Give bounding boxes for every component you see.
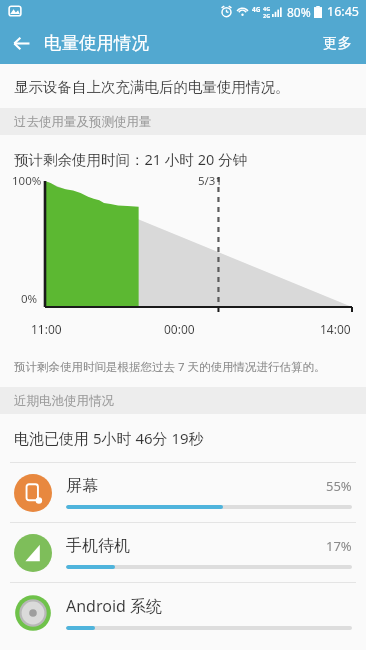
- staticText: 过去使用量及预测使用量: [14, 114, 152, 130]
- staticText: 预计剩余使用时间是根据您过去 7 天的使用情况进行估算的。: [14, 359, 326, 375]
- staticText: 16:45: [327, 3, 359, 20]
- button[interactable]: 手机待机: [0, 523, 366, 582]
- staticText: 0%: [21, 291, 38, 307]
- staticText: 17%: [326, 537, 352, 555]
- staticText: 预计剩余使用时间：21 小时 20 分钟: [14, 149, 247, 169]
- staticText: 显示设备自上次充满电后的电量使用情况。: [14, 78, 290, 96]
- staticText: 00:00: [164, 321, 195, 337]
- staticText: Android 系统: [66, 595, 352, 617]
- staticText: 100%: [12, 173, 42, 189]
- staticText: 11:00: [31, 321, 62, 337]
- staticText: 电池已使用 5小时 46分 19秒: [14, 428, 204, 448]
- button[interactable]: 返回: [0, 22, 42, 64]
- staticText: 80%: [287, 4, 311, 20]
- staticText: 电量使用情况: [44, 32, 149, 54]
- staticText: 4G: [252, 5, 261, 14]
- staticText: 2G: [263, 12, 271, 19]
- button[interactable]: 更多: [309, 24, 366, 62]
- staticText: 更多: [323, 34, 352, 52]
- staticText: 5/31: [198, 173, 223, 189]
- button[interactable]: 屏幕: [0, 463, 366, 522]
- staticText: 14:00: [320, 321, 351, 337]
- staticText: 4G: [263, 5, 271, 12]
- staticText: 手机待机: [66, 536, 326, 556]
- staticText: 近期电池使用情况: [14, 393, 114, 409]
- staticText: 屏幕: [66, 476, 326, 496]
- button[interactable]: Android 系统: [0, 583, 366, 642]
- staticText: 55%: [326, 477, 352, 495]
